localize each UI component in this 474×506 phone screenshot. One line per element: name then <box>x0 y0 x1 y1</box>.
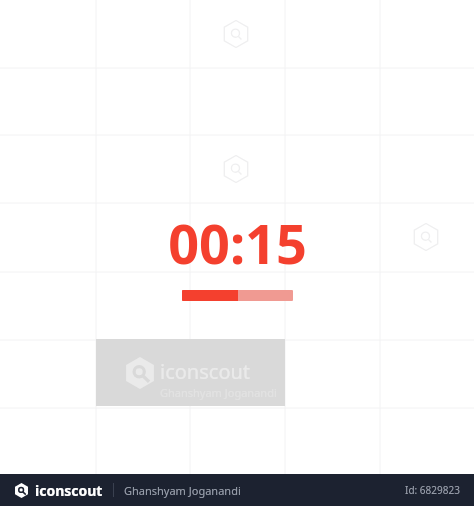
staticText: 00:15 <box>168 206 307 280</box>
staticText: Ghanshyam Joganandi <box>124 483 241 498</box>
other: Iconscout logo <box>14 483 29 498</box>
staticText: iconscout <box>160 358 251 385</box>
staticText: Ghanshyam Joganandi <box>160 385 277 400</box>
button[interactable]: 00:15 <box>0 206 474 301</box>
staticText: iconscout <box>35 481 103 500</box>
staticText: Id: 6829823 <box>405 483 460 497</box>
